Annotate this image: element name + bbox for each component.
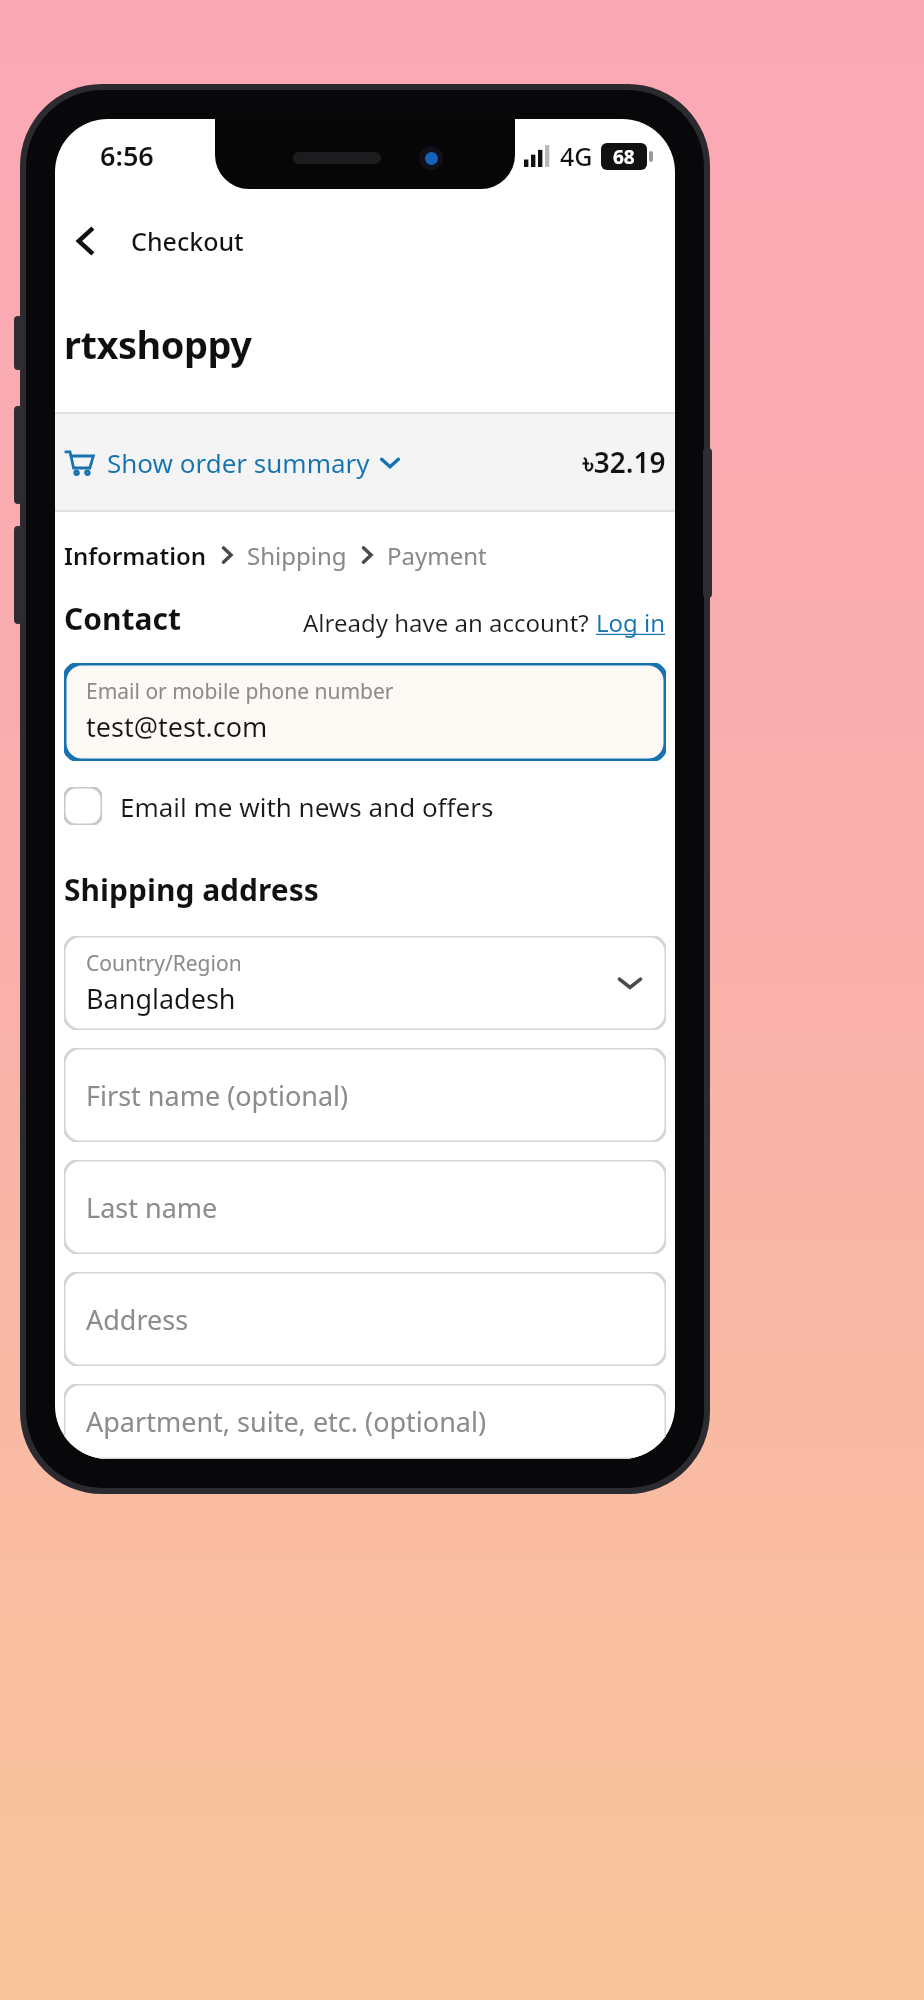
button[interactable]: Already have an account? bbox=[303, 606, 666, 639]
staticText: Show order summary bbox=[107, 445, 370, 480]
button[interactable]: Payment bbox=[387, 539, 487, 572]
staticText: Address bbox=[86, 1301, 189, 1338]
staticText: ৳32.19 bbox=[583, 443, 666, 481]
button[interactable]: Information bbox=[64, 539, 207, 572]
staticText: Contact bbox=[64, 598, 181, 639]
staticText: Already have an account? bbox=[303, 606, 596, 639]
button[interactable]: Checkout bbox=[131, 224, 244, 258]
staticText: 4G bbox=[560, 139, 593, 173]
button[interactable]: First name (optional) bbox=[64, 1048, 666, 1142]
staticText: Log in bbox=[596, 606, 666, 639]
staticText: 6:56 bbox=[100, 137, 154, 174]
button[interactable]: Apartment, suite, etc. (optional) bbox=[64, 1384, 666, 1459]
staticText: rtxshoppy bbox=[64, 318, 252, 370]
staticText: Country/Region bbox=[86, 949, 242, 978]
button[interactable]: Country/Region bbox=[64, 936, 666, 1030]
staticText: Bangladesh bbox=[86, 980, 236, 1017]
staticText: Apartment, suite, etc. (optional) bbox=[86, 1403, 487, 1440]
staticText: test@test.com bbox=[86, 708, 268, 745]
staticText: Shipping address bbox=[64, 869, 319, 910]
button[interactable]: Address bbox=[64, 1272, 666, 1366]
button[interactable]: Email or mobile phone number bbox=[64, 663, 666, 761]
staticText: Email me with news and offers bbox=[120, 789, 494, 824]
staticText: Email or mobile phone number bbox=[86, 677, 394, 706]
button[interactable]: Back bbox=[59, 215, 111, 267]
button[interactable]: Show order summary bbox=[55, 414, 675, 510]
button[interactable]: Last name bbox=[64, 1160, 666, 1254]
staticText: 68 bbox=[613, 144, 635, 170]
button[interactable]: Email me with news and offers bbox=[64, 787, 494, 825]
button[interactable]: Shipping bbox=[247, 539, 347, 572]
staticText: First name (optional) bbox=[86, 1077, 349, 1114]
staticText: Last name bbox=[86, 1189, 218, 1226]
